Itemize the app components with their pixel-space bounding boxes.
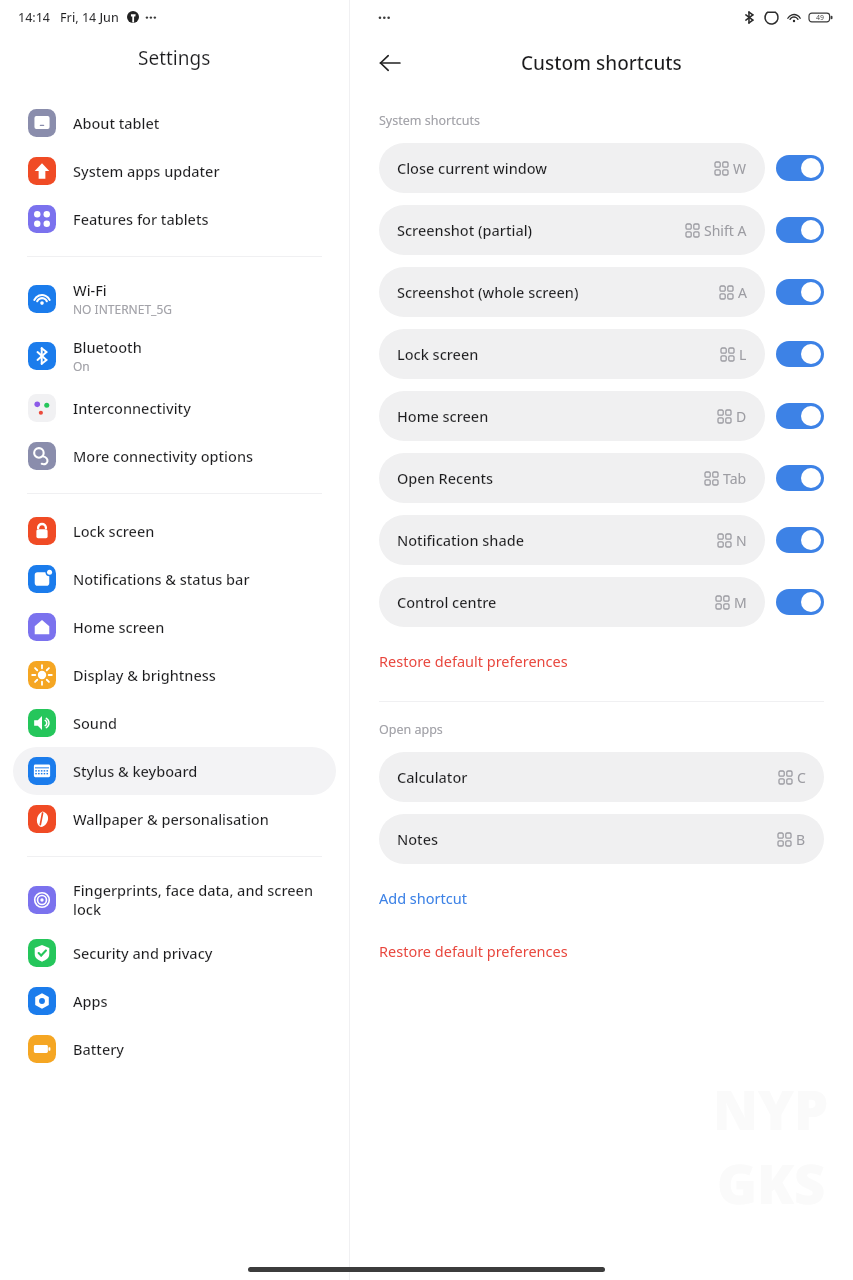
staticText: On	[73, 358, 90, 374]
staticText: Apps	[73, 991, 108, 1011]
button[interactable]: Notification shade	[379, 515, 765, 565]
button[interactable]: Screenshot (whole screen) toggle	[776, 279, 824, 305]
button[interactable]: About tablet	[13, 99, 336, 147]
button[interactable]: Sound	[13, 699, 336, 747]
staticText: Calculator	[397, 767, 468, 787]
button[interactable]: Back	[368, 41, 412, 85]
staticText: Open apps	[379, 721, 443, 738]
button[interactable]: Home screen toggle	[776, 403, 824, 429]
staticText: Lock screen	[397, 344, 479, 364]
button[interactable]: Restore default preferences	[368, 937, 579, 965]
staticText: Wallpaper & personalisation	[73, 809, 269, 829]
staticText: Notes	[397, 829, 439, 849]
staticText: NO INTERNET_5G	[73, 301, 173, 317]
staticText: Notification shade	[397, 530, 525, 550]
button[interactable]: Bluetooth	[13, 327, 336, 384]
button[interactable]: Open Recents	[379, 453, 765, 503]
staticText: Home screen	[397, 406, 489, 426]
staticText: Custom shortcuts	[521, 50, 682, 76]
button[interactable]: Fingerprints, face data, and screen lock	[13, 870, 336, 929]
button[interactable]: Control centre	[379, 577, 765, 627]
staticText: Screenshot (partial)	[397, 220, 533, 240]
staticText: C	[797, 768, 806, 787]
staticText: Fri, 14 Jun	[60, 9, 119, 26]
staticText: Screenshot (whole screen)	[397, 282, 579, 302]
staticText: Open Recents	[397, 468, 494, 488]
button[interactable]: Screenshot (whole screen)	[379, 267, 765, 317]
staticText: Close current window	[397, 158, 548, 178]
button[interactable]: Home screen	[13, 603, 336, 651]
button[interactable]: More connectivity options	[13, 432, 336, 480]
button[interactable]: Wi-Fi	[13, 270, 336, 327]
button[interactable]: Lock screen	[379, 329, 765, 379]
staticText: Settings	[138, 45, 211, 71]
staticText: More connectivity options	[73, 446, 254, 466]
staticText: 14:14	[18, 9, 51, 26]
staticText: W	[733, 159, 747, 178]
staticText: Restore default preferences	[379, 941, 568, 961]
button[interactable]: System apps updater	[13, 147, 336, 195]
button[interactable]: Interconnectivity	[13, 384, 336, 432]
button[interactable]: Lock screen	[13, 507, 336, 555]
button[interactable]: Security and privacy	[13, 929, 336, 977]
staticText: L	[739, 345, 747, 364]
staticText: Interconnectivity	[73, 398, 191, 418]
staticText: Security and privacy	[73, 943, 213, 963]
button[interactable]: Notifications & status bar	[13, 555, 336, 603]
staticText: Features for tablets	[73, 209, 209, 229]
staticText: Fingerprints, face data, and screen lock	[73, 880, 321, 919]
staticText: About tablet	[73, 113, 160, 133]
button[interactable]: Home screen	[379, 391, 765, 441]
staticText: Add shortcut	[379, 888, 467, 908]
button[interactable]: Open Recents toggle	[776, 465, 824, 491]
button[interactable]: Close current window toggle	[776, 155, 824, 181]
staticText: Shift A	[704, 221, 747, 240]
staticText: System shortcuts	[379, 112, 480, 129]
staticText: B	[796, 830, 806, 849]
button[interactable]: Screenshot (partial)	[379, 205, 765, 255]
staticText: Display & brightness	[73, 665, 216, 685]
staticText: Restore default preferences	[379, 651, 568, 671]
staticText: Bluetooth	[73, 337, 142, 357]
button[interactable]: Notification shade toggle	[776, 527, 824, 553]
button[interactable]: Close current window	[379, 143, 765, 193]
staticText: Notifications & status bar	[73, 569, 250, 589]
staticText: Lock screen	[73, 521, 155, 541]
button[interactable]: Restore default preferences	[368, 647, 579, 675]
button[interactable]: Features for tablets	[13, 195, 336, 243]
button[interactable]: Lock screen toggle	[776, 341, 824, 367]
button[interactable]: Wallpaper & personalisation	[13, 795, 336, 843]
button[interactable]: Apps	[13, 977, 336, 1025]
staticText: Sound	[73, 713, 118, 733]
staticText: Wi-Fi	[73, 280, 107, 300]
button[interactable]: Control centre toggle	[776, 589, 824, 615]
button[interactable]: Stylus & keyboard	[13, 747, 336, 795]
staticText: System apps updater	[73, 161, 220, 181]
staticText: A	[738, 283, 747, 302]
staticText: Stylus & keyboard	[73, 761, 198, 781]
button[interactable]: Notes	[379, 814, 824, 864]
staticText: Home screen	[73, 617, 165, 637]
button[interactable]: Screenshot (partial) toggle	[776, 217, 824, 243]
staticText: N	[736, 531, 747, 550]
staticText: 49	[816, 13, 825, 23]
button[interactable]: Calculator	[379, 752, 824, 802]
staticText: M	[734, 593, 747, 612]
staticText: Battery	[73, 1039, 124, 1059]
staticText: D	[736, 407, 747, 426]
button[interactable]: Add shortcut	[368, 884, 478, 912]
staticText: Control centre	[397, 592, 497, 612]
button[interactable]: Display & brightness	[13, 651, 336, 699]
button[interactable]: Battery	[13, 1025, 336, 1073]
staticText: Tab	[723, 469, 747, 488]
